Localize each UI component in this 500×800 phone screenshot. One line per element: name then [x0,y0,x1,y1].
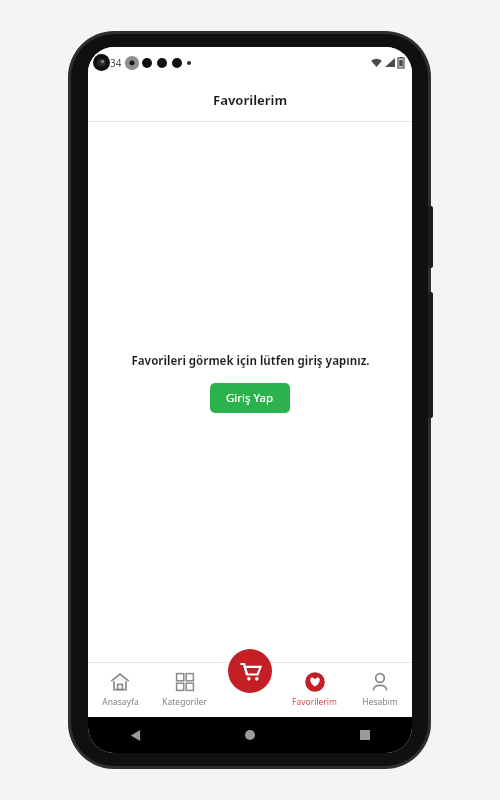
staticText: Favorilerim [213,91,288,109]
button[interactable]: Anasayfa [88,662,152,717]
staticText: Anasayfa [102,696,139,708]
button[interactable]: Home [237,722,263,748]
staticText: Giriş Yap [226,390,274,406]
staticText: 34 [110,56,122,70]
button[interactable]: Hesabım [347,662,412,717]
staticText: Kategoriler [162,696,207,708]
button[interactable]: Favorilerim [282,662,347,717]
button[interactable]: Kategoriler [152,662,217,717]
button[interactable]: Sepet [228,649,272,693]
button[interactable]: Giriş Yap [210,383,290,413]
button[interactable]: Back [122,722,148,748]
staticText: Favorileri görmek için lütfen giriş yapı… [131,353,370,369]
button[interactable]: Recent apps [352,722,378,748]
staticText: Favorilerim [292,696,337,708]
staticText: Hesabım [362,696,398,708]
